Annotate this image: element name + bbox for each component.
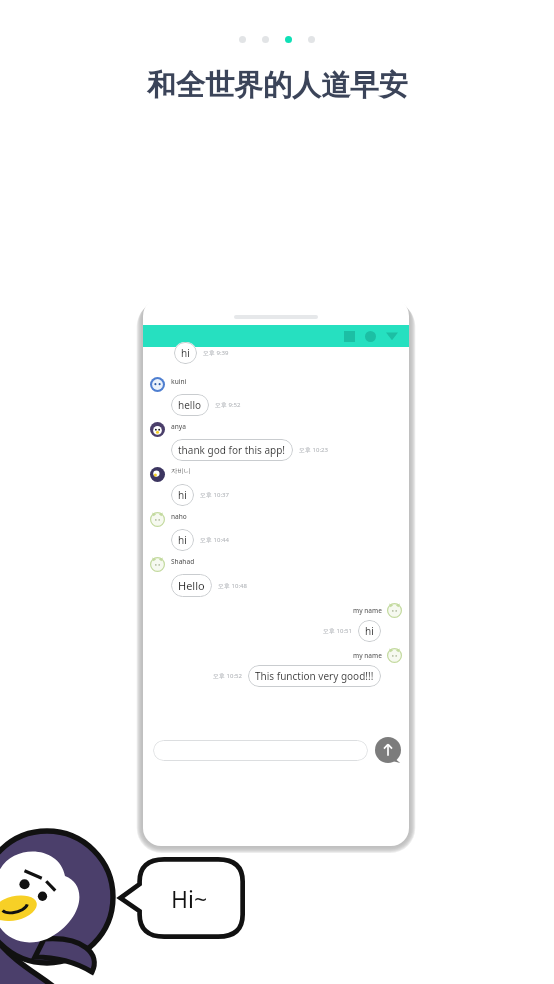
staticText: Hi~ xyxy=(171,883,208,914)
button[interactable]: hi xyxy=(171,484,194,506)
button[interactable]: 자비니 xyxy=(143,467,409,506)
staticText: 오후 10:23 xyxy=(299,446,328,454)
button[interactable]: Message input xyxy=(153,740,368,761)
staticText: 오후 10:51 xyxy=(323,627,352,635)
button[interactable]: Hi~ xyxy=(118,857,245,939)
staticText: This function very good!!! xyxy=(255,669,374,683)
staticText: kuini xyxy=(171,377,187,386)
button[interactable]: thank god for this app! xyxy=(171,439,293,461)
staticText: hi xyxy=(178,488,187,502)
staticText: 和全世界的人道早安 xyxy=(147,67,408,104)
staticText: 자비니 xyxy=(171,467,191,475)
button[interactable]: my name xyxy=(143,648,409,687)
button[interactable]: kuini xyxy=(143,377,409,416)
staticText: hello xyxy=(178,398,202,412)
staticText: naho xyxy=(171,512,187,521)
staticText: Shahad xyxy=(171,557,195,566)
staticText: my name xyxy=(353,651,382,660)
staticText: hi xyxy=(178,533,187,547)
button[interactable]: Hello xyxy=(171,574,212,597)
button[interactable] xyxy=(239,36,246,43)
button[interactable]: hi xyxy=(171,529,194,551)
button[interactable]: Shahad xyxy=(143,557,409,597)
button[interactable] xyxy=(285,36,292,43)
button[interactable]: hi xyxy=(358,620,381,642)
staticText: 오후 10:44 xyxy=(200,536,229,544)
staticText: anya xyxy=(171,422,186,431)
staticText: 오후 10:48 xyxy=(218,582,247,590)
staticText: 오후 10:37 xyxy=(200,491,229,499)
staticText: 오후 10:52 xyxy=(213,672,242,680)
button[interactable]: naho xyxy=(143,512,409,551)
other: Mascot xyxy=(0,834,134,984)
staticText: 오후 9:39 xyxy=(203,349,229,357)
button[interactable]: This function very good!!! xyxy=(248,665,381,687)
button[interactable]: anya xyxy=(143,422,409,461)
staticText: thank god for this app! xyxy=(178,443,286,457)
button[interactable]: hi xyxy=(174,342,197,364)
staticText: hi xyxy=(365,624,374,638)
staticText: Hello xyxy=(178,578,205,593)
button[interactable]: hello xyxy=(171,394,209,416)
staticText: 오후 9:52 xyxy=(215,401,241,409)
button[interactable] xyxy=(262,36,269,43)
staticText: my name xyxy=(353,606,382,615)
button[interactable]: Send xyxy=(375,737,401,763)
button[interactable]: my name xyxy=(143,603,409,642)
button[interactable] xyxy=(308,36,315,43)
staticText: hi xyxy=(181,346,190,360)
